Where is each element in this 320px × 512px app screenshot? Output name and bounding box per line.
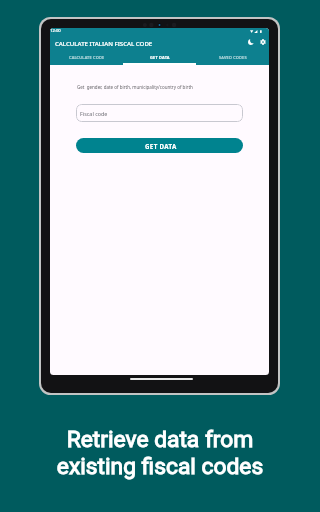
button[interactable]: CALCULATE CODE [50, 50, 123, 65]
button[interactable]: Settings [257, 36, 268, 47]
button[interactable]: Toggle dark mode [245, 36, 256, 47]
staticText: Fiscal code [80, 110, 108, 117]
button[interactable]: SAVED CODES [196, 50, 269, 65]
staticText: CALCULATE CODE [69, 55, 105, 60]
staticText: GET DATA [150, 55, 170, 60]
button[interactable]: GET DATA [123, 50, 196, 65]
staticText: SAVED CODES [219, 55, 247, 60]
staticText: Get gender, date of birth, municipality/… [77, 84, 193, 90]
staticText: 12:00 [50, 28, 61, 34]
staticText: GET DATA [145, 142, 177, 150]
staticText: CALCULATE ITALIAN FISCAL CODE [55, 39, 153, 47]
button[interactable]: Fiscal code [76, 104, 243, 122]
staticText: Retrieve data from existing fiscal codes [0, 426, 320, 480]
button[interactable]: GET DATA [76, 138, 243, 153]
